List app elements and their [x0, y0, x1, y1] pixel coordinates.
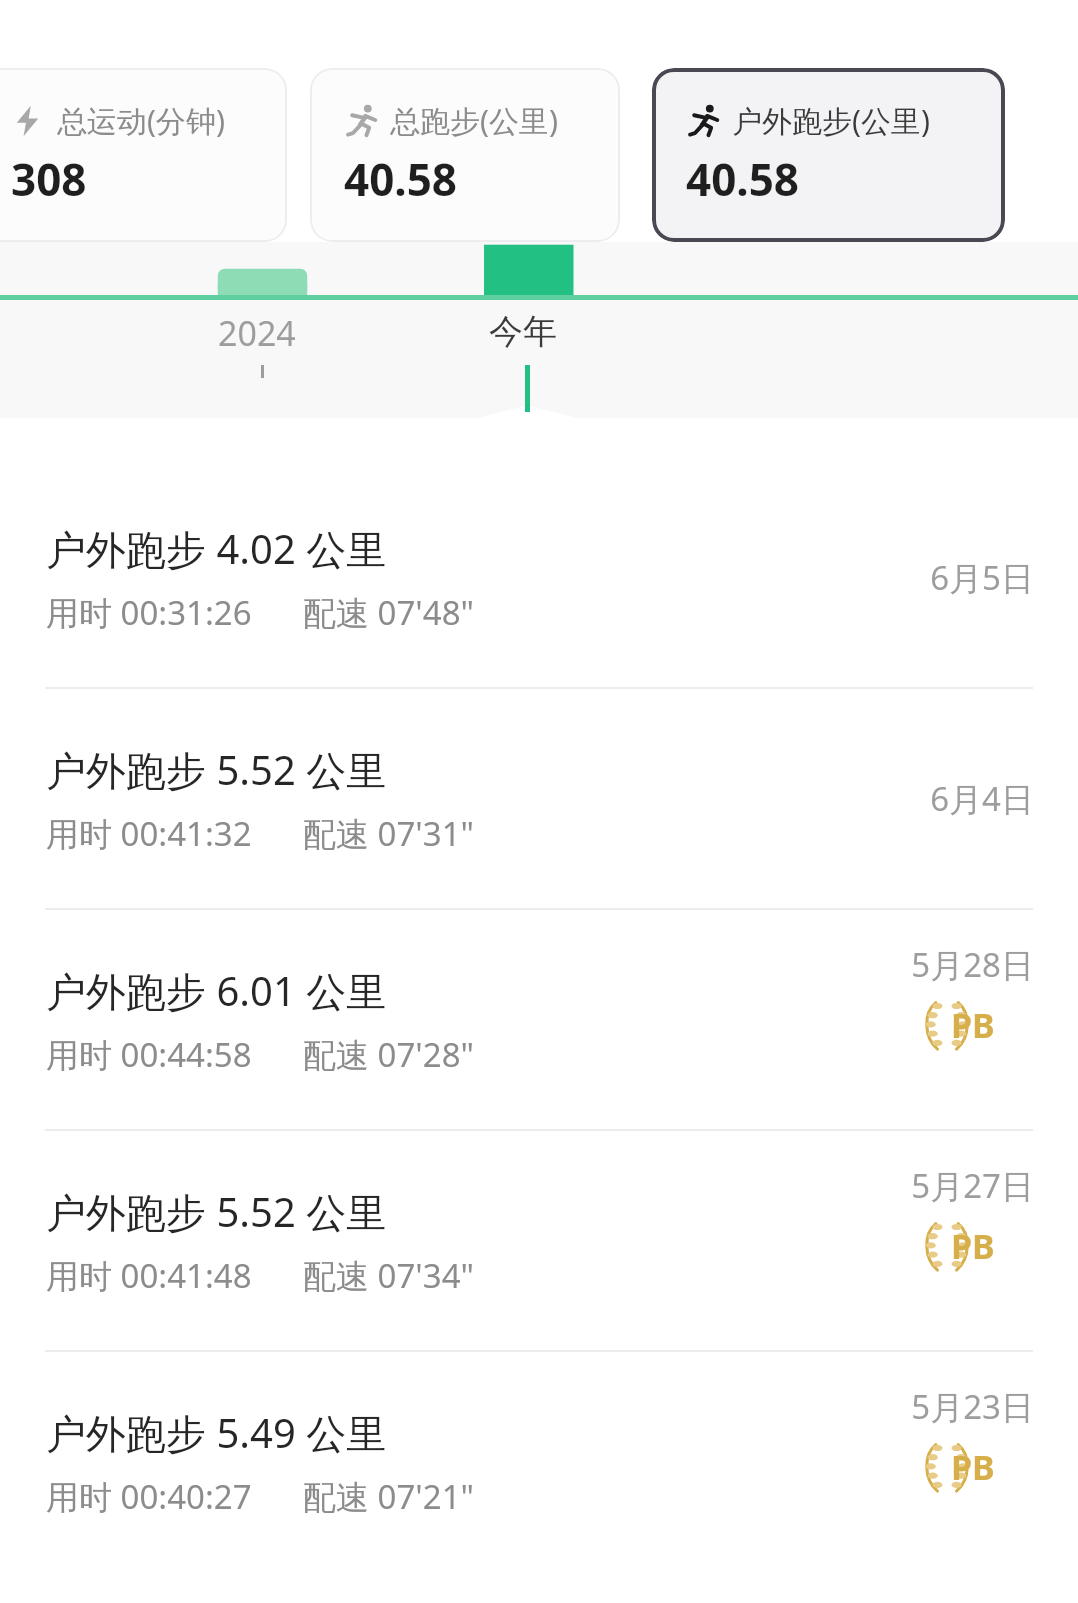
staticText: 用时 00:44:58 配速 07'28": [46, 1032, 474, 1077]
staticText: 2024: [218, 310, 296, 356]
staticText: PB: [951, 1444, 995, 1490]
staticText: 户外跑步 4.02 公里: [46, 521, 387, 576]
staticText: PB: [951, 1002, 995, 1048]
staticText: 用时 00:41:32 配速 07'31": [46, 811, 474, 856]
staticText: 6月5日: [930, 555, 1034, 600]
button[interactable]: 户外跑步 6.01 公里: [0, 910, 1078, 1129]
staticText: 5月23日: [911, 1384, 1034, 1429]
staticText: 总跑步(公里): [390, 100, 558, 141]
staticText: 户外跑步(公里): [732, 100, 930, 141]
staticText: 308: [11, 149, 87, 209]
button[interactable]: 户外跑步 5.49 公里: [0, 1352, 1078, 1571]
staticText: 总运动(分钟): [57, 100, 225, 141]
staticText: 40.58: [686, 149, 800, 209]
staticText: 6月4日: [930, 776, 1034, 821]
button[interactable]: 总跑步(公里): [310, 68, 620, 242]
staticText: 户外跑步 6.01 公里: [46, 963, 387, 1018]
staticText: 户外跑步 5.49 公里: [46, 1405, 387, 1460]
button[interactable]: 户外跑步(公里): [652, 68, 1005, 242]
staticText: 用时 00:31:26 配速 07'48": [46, 590, 474, 635]
button[interactable]: 总运动(分钟): [0, 68, 287, 242]
staticText: 用时 00:40:27 配速 07'21": [46, 1474, 474, 1519]
staticText: 用时 00:41:48 配速 07'34": [46, 1253, 474, 1298]
staticText: 户外跑步 5.52 公里: [46, 1184, 387, 1239]
button[interactable]: 户外跑步 4.02 公里: [0, 468, 1078, 687]
staticText: 5月28日: [911, 942, 1034, 987]
staticText: 户外跑步 5.52 公里: [46, 742, 387, 797]
staticText: 今年: [489, 310, 557, 353]
staticText: 5月27日: [911, 1163, 1034, 1208]
staticText: 40.58: [344, 149, 458, 209]
button[interactable]: 户外跑步 5.52 公里: [0, 689, 1078, 908]
staticText: PB: [951, 1223, 995, 1269]
button[interactable]: 户外跑步 5.52 公里: [0, 1131, 1078, 1350]
